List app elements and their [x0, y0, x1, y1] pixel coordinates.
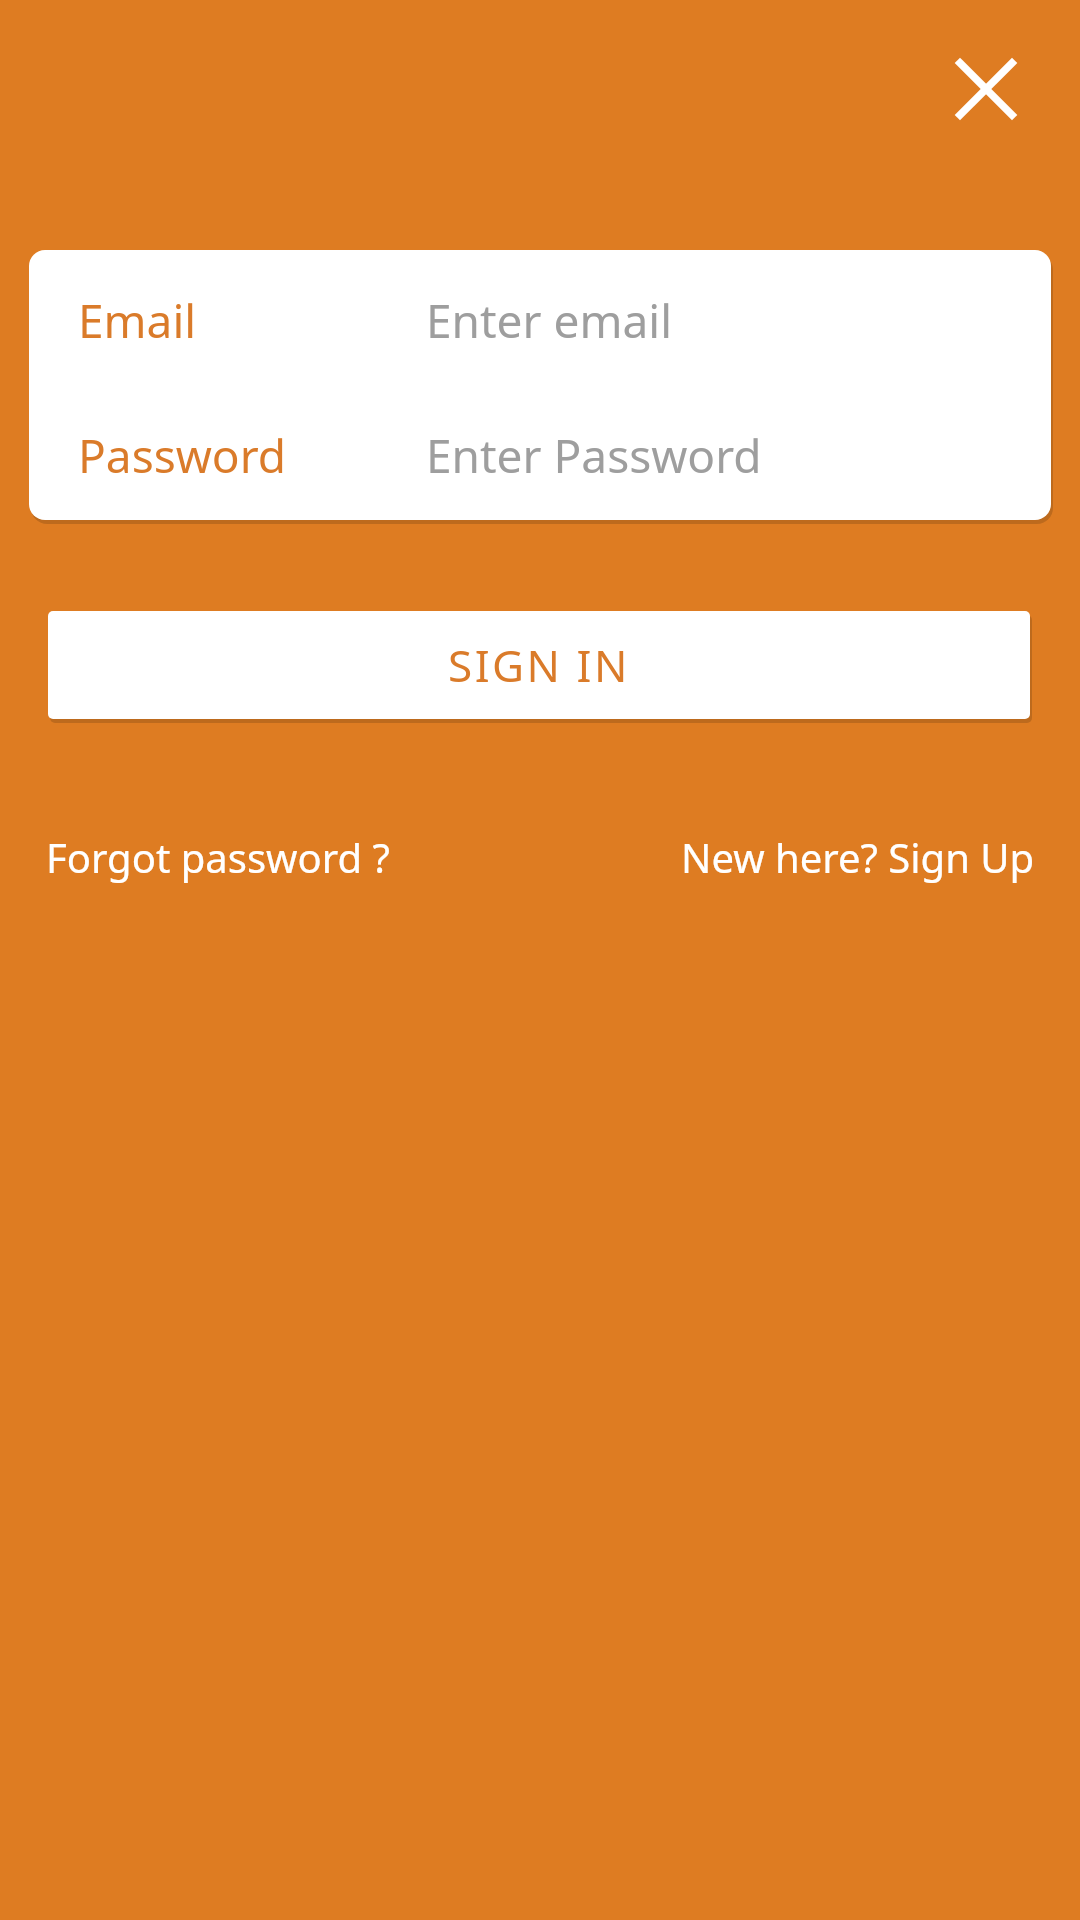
- button[interactable]: Password: [29, 412, 1051, 498]
- button[interactable]: Forgot password ?: [46, 826, 390, 888]
- staticText: Forgot password ?: [46, 830, 390, 884]
- staticText: New here? Sign Up: [681, 830, 1035, 884]
- button[interactable]: SIGN IN: [48, 611, 1030, 719]
- button[interactable]: Close: [938, 41, 1034, 137]
- staticText: Password: [78, 424, 426, 487]
- staticText: Email: [78, 289, 426, 352]
- staticText: SIGN IN: [448, 635, 630, 695]
- button[interactable]: Email: [29, 277, 1051, 363]
- button[interactable]: New here? Sign Up: [681, 826, 1035, 888]
- staticText: Enter Password: [426, 424, 762, 487]
- staticText: Enter email: [426, 289, 673, 352]
